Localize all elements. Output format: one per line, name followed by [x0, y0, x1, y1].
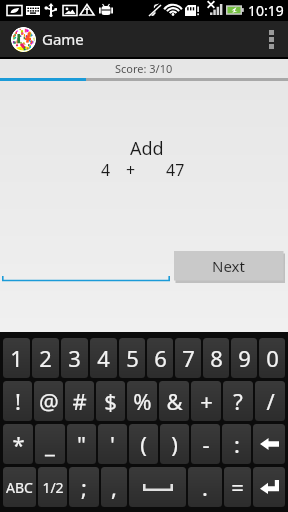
staticText: 1: [10, 343, 23, 373]
staticText: /: [266, 386, 275, 416]
staticText: &: [166, 386, 183, 416]
button[interactable]: @: [34, 381, 63, 421]
staticText: ABC: [6, 478, 33, 497]
staticText: ;: [81, 472, 87, 502]
staticText: ": [77, 429, 86, 459]
staticText: 4: [97, 343, 110, 373]
button[interactable]: 9: [231, 338, 257, 378]
staticText: ): [171, 429, 178, 459]
button[interactable]: ,: [101, 467, 127, 507]
staticText: $: [104, 386, 117, 416]
staticText: +: [126, 159, 136, 181]
button[interactable]: #: [65, 381, 94, 421]
staticText: !: [15, 386, 21, 416]
button[interactable]: /: [255, 381, 285, 421]
button[interactable]: Space: [129, 467, 186, 507]
staticText: =: [231, 472, 244, 502]
button[interactable]: ': [98, 424, 127, 464]
staticText: +: [200, 386, 213, 416]
button[interactable]: 1: [3, 338, 30, 378]
button[interactable]: !: [3, 381, 32, 421]
staticText: 7: [182, 343, 195, 373]
staticText: 6: [154, 343, 167, 373]
button[interactable]: Backspace: [253, 424, 285, 464]
button[interactable]: 1/2: [38, 467, 67, 507]
staticText: .: [202, 472, 208, 502]
staticText: -: [202, 429, 210, 459]
staticText: 47: [166, 159, 185, 181]
button[interactable]: 7: [175, 338, 201, 378]
staticText: @: [39, 386, 59, 416]
staticText: 2: [39, 343, 52, 373]
staticText: Add: [130, 136, 164, 161]
button[interactable]: ;: [69, 467, 99, 507]
button[interactable]: More options: [254, 21, 288, 57]
button[interactable]: 5: [119, 338, 145, 378]
button[interactable]: 3: [61, 338, 88, 378]
button[interactable]: [2, 259, 170, 282]
button[interactable]: _: [35, 424, 65, 464]
button[interactable]: 4: [90, 338, 117, 378]
button[interactable]: $: [96, 381, 125, 421]
button[interactable]: (: [129, 424, 158, 464]
button[interactable]: -: [191, 424, 220, 464]
button[interactable]: ?: [223, 381, 253, 421]
button[interactable]: Enter: [253, 467, 285, 507]
staticText: 4: [101, 159, 111, 181]
staticText: #: [72, 386, 87, 416]
staticText: *: [12, 429, 25, 459]
staticText: ?: [233, 386, 243, 416]
staticText: 3: [68, 343, 81, 373]
staticText: ': [110, 429, 115, 459]
staticText: :: [234, 429, 240, 459]
staticText: Next: [212, 256, 245, 276]
button[interactable]: 6: [147, 338, 173, 378]
button[interactable]: 2: [32, 338, 59, 378]
staticText: Score: 3/10: [115, 61, 173, 76]
button[interactable]: ": [67, 424, 96, 464]
staticText: 1/2: [42, 478, 64, 497]
button[interactable]: 8: [203, 338, 229, 378]
button[interactable]: ): [160, 424, 189, 464]
button[interactable]: 0: [259, 338, 285, 378]
staticText: 9: [238, 343, 251, 373]
button[interactable]: ABC: [3, 467, 36, 507]
button[interactable]: *: [3, 424, 33, 464]
button[interactable]: .: [188, 467, 222, 507]
staticText: 10:19: [248, 1, 284, 20]
button[interactable]: Next: [174, 251, 285, 282]
staticText: 5: [126, 343, 139, 373]
staticText: 8: [210, 343, 223, 373]
staticText: _: [45, 429, 55, 459]
staticText: 0: [266, 343, 279, 373]
button[interactable]: :: [222, 424, 251, 464]
staticText: ,: [111, 472, 117, 502]
button[interactable]: =: [224, 467, 251, 507]
staticText: (: [140, 429, 147, 459]
staticText: Game: [42, 29, 84, 49]
button[interactable]: +: [191, 381, 221, 421]
button[interactable]: &: [159, 381, 189, 421]
button[interactable]: %: [127, 381, 157, 421]
staticText: %: [133, 386, 152, 416]
